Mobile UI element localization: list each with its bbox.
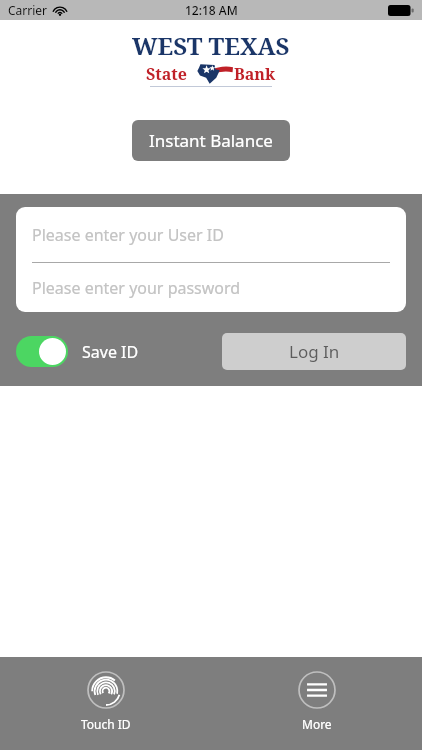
staticText: State	[146, 63, 187, 84]
button[interactable]: Touch ID	[65, 669, 147, 734]
staticText: WEST TEXAS	[132, 29, 290, 62]
button[interactable]: Log In	[222, 333, 406, 370]
staticText: Please enter your password	[32, 277, 241, 299]
button[interactable]: More	[282, 669, 352, 734]
staticText: Please enter your User ID	[32, 224, 224, 246]
staticText: Touch ID	[81, 716, 131, 732]
button[interactable]: Instant Balance	[132, 120, 290, 161]
staticText: Instant Balance	[149, 129, 273, 152]
button[interactable]: Save ID	[16, 336, 139, 367]
staticText: 12:18 AM	[185, 2, 238, 18]
staticText: Save ID	[82, 341, 139, 363]
staticText: Log In	[289, 340, 340, 363]
staticText: Bank	[234, 63, 276, 84]
button[interactable]: Please enter your password	[16, 263, 406, 312]
button[interactable]: Please enter your User ID	[16, 207, 406, 262]
staticText: Carrier	[8, 2, 48, 18]
staticText: More	[302, 716, 332, 732]
